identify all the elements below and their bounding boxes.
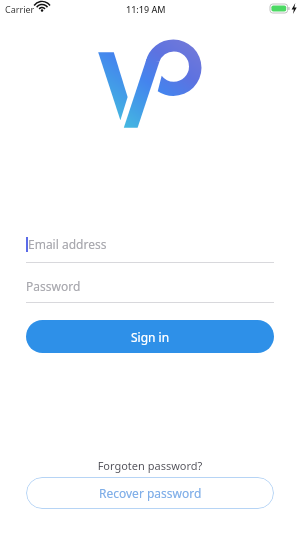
staticText: Recover password: [99, 485, 202, 501]
button[interactable]: Recover password: [26, 477, 274, 509]
staticText: Forgoten password?: [0, 458, 300, 473]
staticText: 11:19 AM: [126, 3, 166, 15]
staticText: Sign in: [131, 329, 170, 345]
staticText: Password: [26, 278, 81, 294]
staticText: Email address: [28, 236, 107, 252]
button[interactable]: Sign in: [26, 320, 274, 353]
staticText: Carrier: [5, 3, 35, 15]
